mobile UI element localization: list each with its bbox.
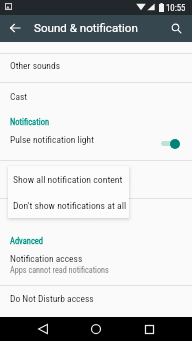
staticText: Apps cannot read notifications <box>10 265 109 275</box>
staticText: Cast <box>10 91 28 102</box>
staticText: On the lock screen <box>10 169 80 180</box>
button[interactable]: Don't show notifications at all <box>8 192 129 218</box>
button[interactable]: Pulse notification light <box>0 134 192 148</box>
button[interactable]: Navigate up <box>3 16 27 40</box>
staticText: 10:55 <box>166 3 186 13</box>
button[interactable]: Home <box>84 317 108 341</box>
button[interactable]: Cast <box>0 91 192 105</box>
button[interactable]: App notifications <box>0 207 192 221</box>
staticText: Other sounds <box>10 60 60 71</box>
button[interactable]: Pulse notification light toggle <box>155 133 185 153</box>
button[interactable]: Show all notification content <box>8 166 129 192</box>
staticText: Show all notification content <box>13 174 123 185</box>
staticText: Pulse notification light <box>10 134 94 145</box>
staticText: Sound & notification <box>34 21 138 35</box>
button[interactable]: Back <box>31 317 55 341</box>
button[interactable]: Search <box>164 16 188 40</box>
button[interactable]: Other sounds <box>0 60 192 74</box>
staticText: Do Not Disturb access <box>10 293 94 304</box>
staticText: Advanced <box>10 236 44 246</box>
staticText: Don't show notifications at all <box>13 200 127 211</box>
staticText: Notification access <box>10 253 83 264</box>
staticText: Notification <box>10 117 50 127</box>
button[interactable]: Notification access <box>0 253 192 267</box>
staticText: App notifications <box>10 207 74 218</box>
button[interactable]: On the lock screen <box>0 169 192 183</box>
button[interactable]: Recent apps <box>137 317 161 341</box>
button[interactable]: Do Not Disturb access <box>0 293 192 307</box>
